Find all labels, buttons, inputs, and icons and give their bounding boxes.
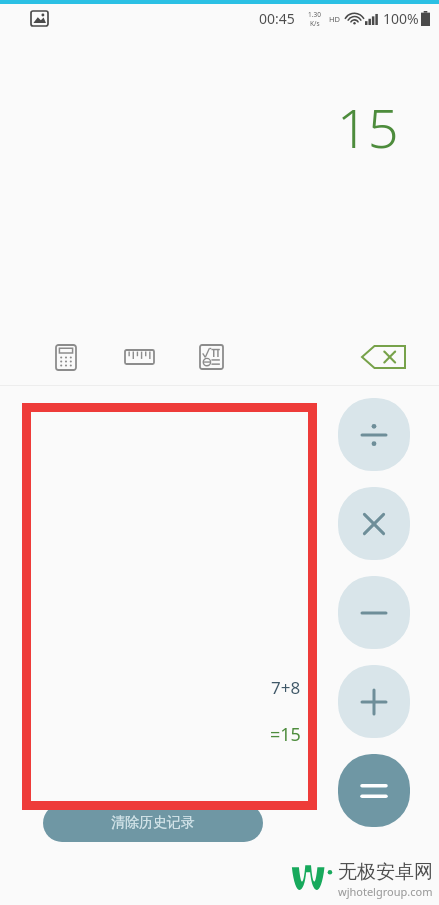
button[interactable]: Add <box>338 665 410 738</box>
staticText: 无极安卓网 <box>338 860 433 884</box>
button[interactable]: Subtract <box>338 576 410 649</box>
staticText: 100% <box>383 9 419 28</box>
button[interactable]: 清除历史记录 <box>43 804 263 842</box>
button[interactable]: Equals <box>338 754 410 827</box>
staticText: 15 <box>337 90 399 164</box>
button[interactable]: Backspace <box>357 337 411 377</box>
staticText: =15 <box>270 722 301 747</box>
staticText: wjhotelgroup.com <box>338 884 433 899</box>
button[interactable]: Calculator <box>44 335 88 379</box>
staticText: 00:45 <box>259 9 295 28</box>
staticText: 清除历史记录 <box>111 814 195 832</box>
staticText: 1.30 <box>308 10 321 19</box>
staticText: HD <box>329 14 341 24</box>
staticText: 7+8 <box>271 676 301 699</box>
button[interactable]: Divide <box>338 398 410 471</box>
button[interactable]: Multiply <box>338 487 410 560</box>
button[interactable]: Unit converter <box>117 335 161 379</box>
staticText: K/s <box>310 19 320 28</box>
button[interactable]: Scientific mode <box>189 335 233 379</box>
